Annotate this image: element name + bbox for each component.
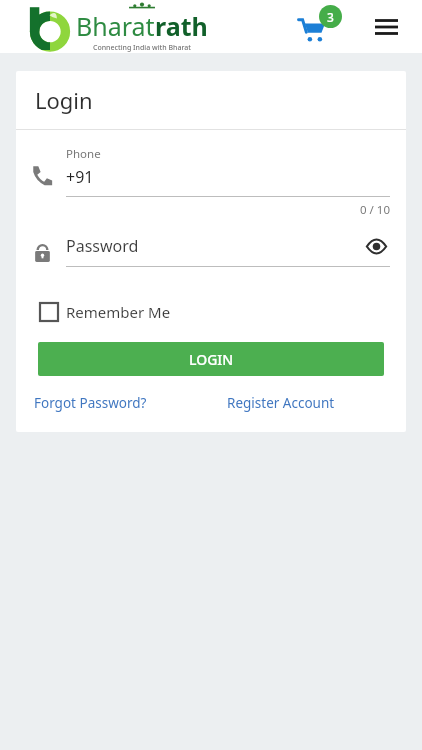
- staticText: Bharat: [76, 9, 155, 43]
- button[interactable]: Remember Me: [32, 295, 181, 329]
- staticText: LOGIN: [189, 350, 234, 369]
- button[interactable]: Menu: [366, 7, 406, 47]
- button[interactable]: LOGIN: [38, 342, 384, 376]
- staticText: Forgot Password?: [34, 394, 147, 412]
- staticText: Phone: [66, 146, 101, 162]
- button[interactable]: Show password: [362, 232, 390, 260]
- staticText: +91: [66, 166, 94, 188]
- staticText: Password: [66, 235, 362, 257]
- staticText: Register Account: [227, 394, 335, 412]
- staticText: 3: [327, 9, 334, 25]
- staticText: Login: [35, 85, 93, 115]
- staticText: Remember Me: [66, 302, 171, 322]
- button[interactable]: Register Account: [227, 394, 335, 412]
- staticText: Connecting India with Bharat: [93, 43, 191, 53]
- button[interactable]: Cart, 3 items: [296, 3, 344, 51]
- button[interactable]: Bharat: [27, 1, 208, 53]
- button[interactable]: Forgot Password?: [34, 394, 147, 412]
- staticText: rath: [155, 9, 208, 43]
- staticText: 0 / 10: [32, 202, 390, 218]
